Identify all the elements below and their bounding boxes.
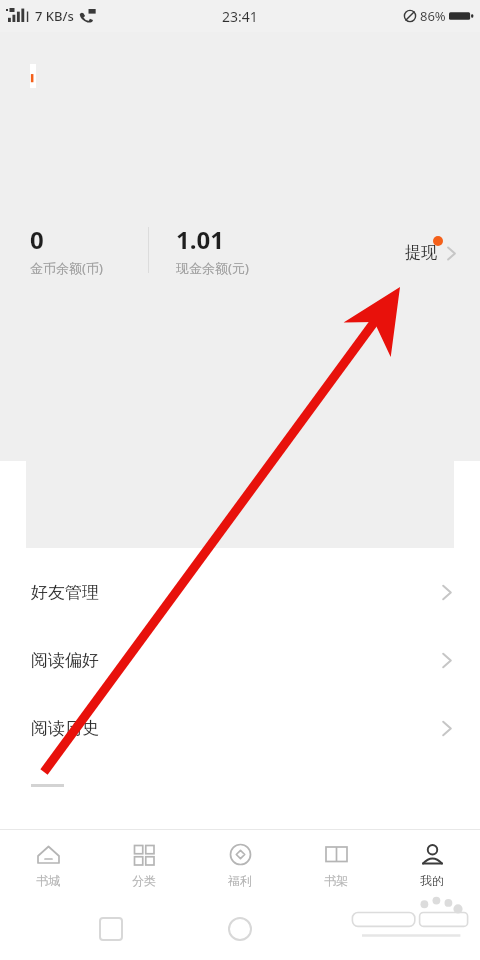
staticText: 好友管理 — [31, 582, 99, 603]
button[interactable]: 我的 — [384, 830, 480, 898]
other: Home — [228, 917, 252, 941]
staticText: 福利 — [228, 873, 252, 888]
staticText: 提现 — [405, 243, 437, 263]
button[interactable]: 提现 — [401, 231, 460, 269]
staticText: 7 KB/s — [35, 7, 74, 25]
button[interactable]: 福利 — [192, 830, 288, 898]
staticText: 阅读偏好 — [31, 650, 99, 671]
button[interactable]: 阅读偏好 — [0, 626, 480, 694]
staticText: 1.01 — [176, 223, 224, 256]
button[interactable]: 1.01 — [176, 223, 249, 277]
button[interactable]: 0 — [30, 223, 103, 277]
staticText: 阅读历史 — [31, 718, 99, 739]
staticText: 0 — [30, 223, 44, 256]
staticText: 分类 — [132, 873, 156, 888]
staticText: 书架 — [324, 873, 348, 888]
button[interactable]: 阅读历史 — [0, 694, 480, 762]
button[interactable]: 分类 — [96, 830, 192, 898]
staticText: 金币余额(币) — [30, 259, 103, 277]
button[interactable]: 书架 — [288, 830, 384, 898]
staticText: 书城 — [36, 873, 60, 888]
staticText: 我的 — [420, 873, 444, 888]
button[interactable]: 好友管理 — [0, 558, 480, 626]
staticText: 23:41 — [222, 7, 258, 26]
other: Recent apps — [100, 918, 122, 940]
staticText: 现金余额(元) — [176, 259, 249, 277]
button[interactable]: 书城 — [0, 830, 96, 898]
staticText: 86% — [420, 7, 446, 25]
